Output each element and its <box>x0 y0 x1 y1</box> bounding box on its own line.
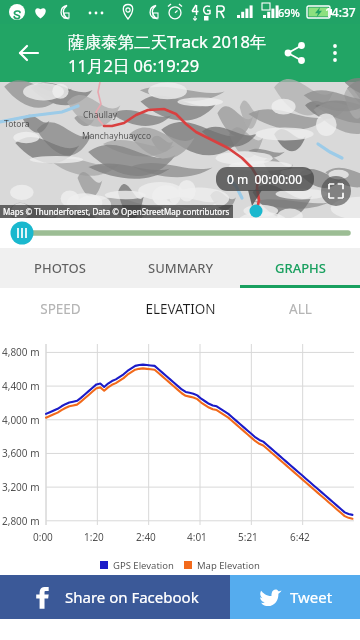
button[interactable]: Share on Facebook <box>0 575 230 619</box>
button[interactable]: SPEED <box>0 288 120 330</box>
staticText: 11月2日 06:19:29 <box>68 54 200 77</box>
staticText: 4,800 m <box>2 345 40 359</box>
button[interactable]: Back <box>8 32 50 74</box>
staticText: 0 m 00:00:00 <box>227 171 303 187</box>
staticText: 0:00 <box>33 530 53 544</box>
staticText: 3,600 m <box>2 446 40 460</box>
staticText: 4,400 m <box>2 379 40 393</box>
staticText: 14:37 <box>325 4 356 20</box>
button[interactable]: ALL <box>240 288 360 330</box>
staticText: 3,200 m <box>2 480 40 494</box>
staticText: ALL <box>289 300 312 318</box>
staticText: 2:40 <box>136 530 156 544</box>
staticText: Map Elevation <box>197 559 260 572</box>
staticText: GRAPHS <box>275 259 326 277</box>
staticText: Maps © Thunderforest, Data © OpenStreetM… <box>3 206 230 217</box>
staticText: Totora <box>4 118 30 130</box>
staticText: 4:01 <box>187 530 207 544</box>
staticText: ELEVATION <box>145 300 216 318</box>
staticText: 1:20 <box>84 530 104 544</box>
button[interactable]: Fullscreen <box>321 176 351 206</box>
staticText: 4,000 m <box>2 413 40 427</box>
staticText: GPS Elevation <box>113 559 174 572</box>
staticText: PHOTOS <box>34 259 86 277</box>
staticText: 2,800 m <box>2 514 40 528</box>
button[interactable]: SUMMARY <box>120 248 240 288</box>
staticText: SUMMARY <box>148 259 213 277</box>
button[interactable]: Tweet <box>230 575 360 619</box>
button[interactable]: GRAPHS <box>240 248 360 288</box>
staticText: 薩康泰第二天Track 2018年 <box>68 30 267 53</box>
staticText: Manchayhuaycco <box>82 130 152 142</box>
button[interactable]: PHOTOS <box>0 248 120 288</box>
staticText: Chaullay <box>83 109 118 121</box>
button[interactable]: Share <box>274 32 316 74</box>
staticText: Share on Facebook <box>65 587 199 607</box>
staticText: 5:21 <box>238 530 258 544</box>
button[interactable]: ELEVATION <box>120 288 240 330</box>
button[interactable]: More options <box>314 32 356 74</box>
staticText: Tweet <box>290 587 333 607</box>
staticText: 69% <box>278 5 300 20</box>
staticText: SPEED <box>40 300 81 318</box>
button[interactable] <box>0 218 360 248</box>
staticText: 6:42 <box>290 530 310 544</box>
